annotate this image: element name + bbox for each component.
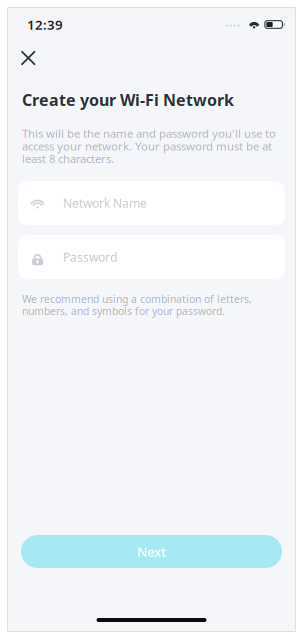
staticText: Network Name (63, 195, 147, 211)
staticText: Next (137, 542, 166, 561)
button[interactable]: Next (21, 535, 282, 568)
staticText: Password (63, 249, 117, 265)
staticText: 12:39 (27, 15, 63, 34)
staticText: We recommend using a combination of lett… (22, 293, 252, 317)
staticText: This will be the name and password you'l… (22, 127, 276, 165)
staticText: Create your Wi-Fi Network (22, 89, 234, 111)
button[interactable]: Close (7, 43, 54, 73)
